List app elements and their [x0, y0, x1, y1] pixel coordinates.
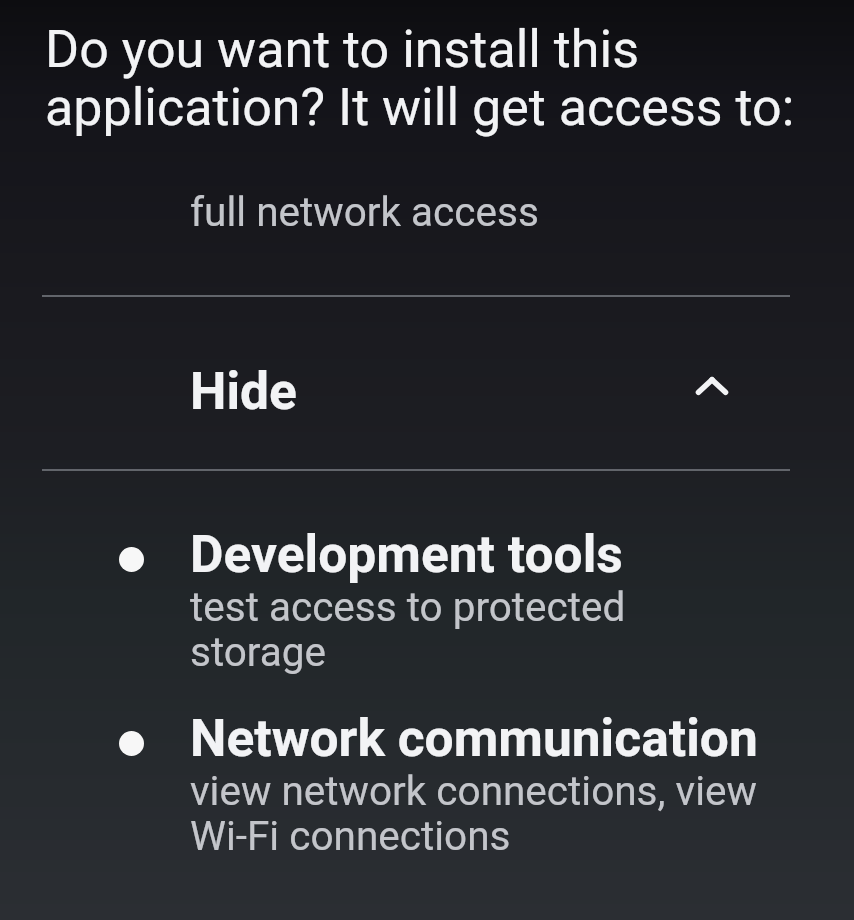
staticText: Development tools — [190, 524, 762, 584]
staticText: full network access — [190, 188, 539, 235]
staticText: test access to protected storage — [190, 583, 762, 676]
staticText: view network connections, view Wi-Fi con… — [190, 767, 762, 860]
staticText: Hide — [190, 361, 297, 421]
staticText: Do you want to install this application?… — [45, 19, 805, 137]
button[interactable]: Hide — [0, 337, 854, 445]
button[interactable]: Network communication — [0, 708, 854, 880]
button[interactable]: Collapse permission list — [676, 350, 748, 422]
button[interactable]: Development tools — [0, 524, 854, 696]
staticText: Network communication — [190, 708, 762, 768]
